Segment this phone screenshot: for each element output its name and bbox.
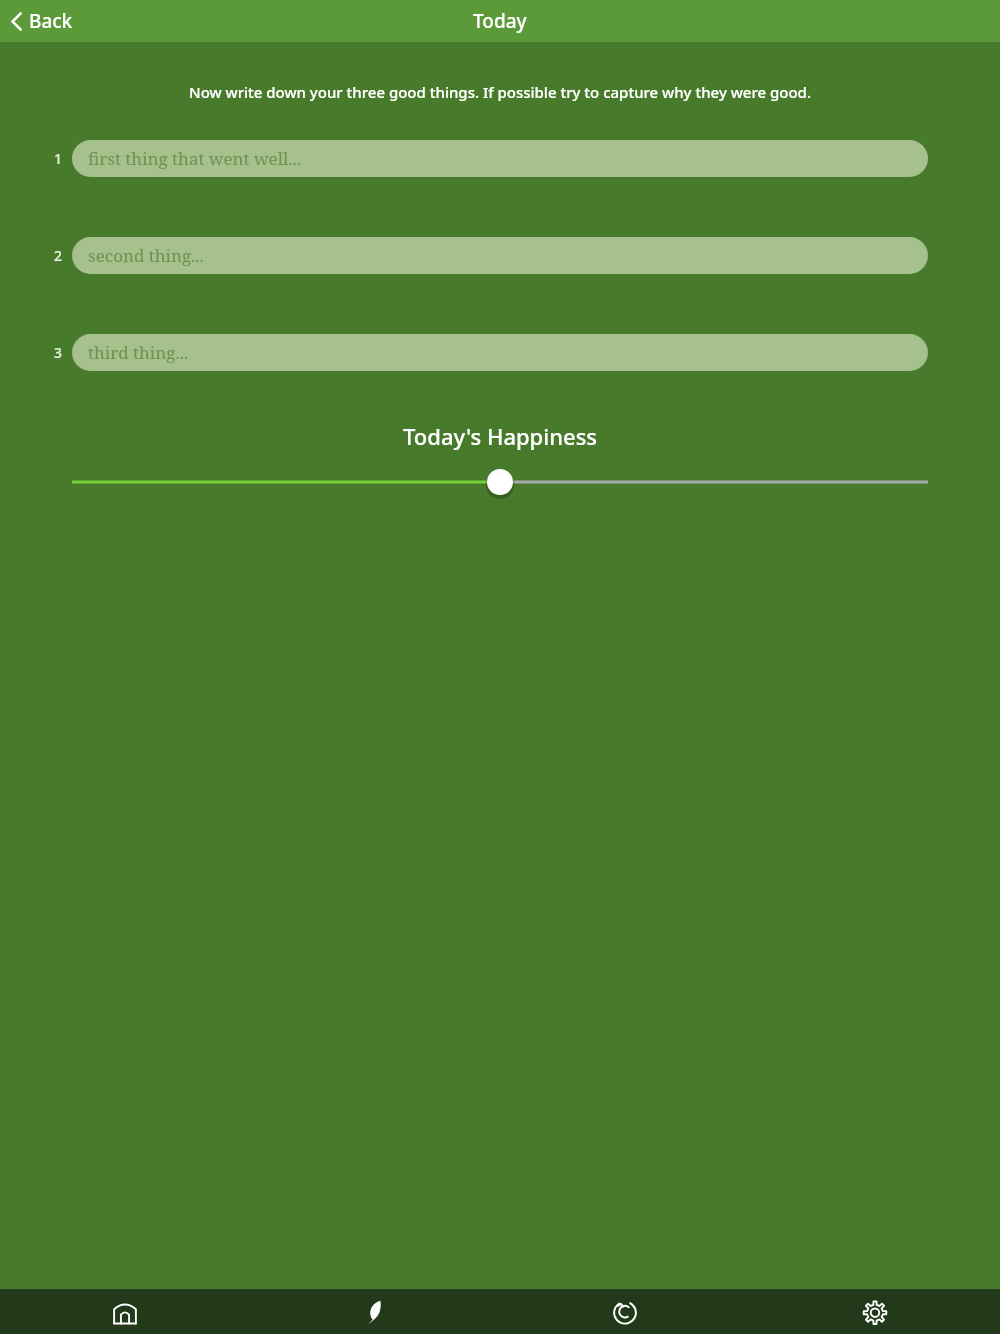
staticText: Now write down your three good things. I… xyxy=(8,82,992,102)
staticText: 1 xyxy=(54,149,63,168)
button[interactable]: Write entry xyxy=(250,1289,500,1334)
staticText: 2 xyxy=(54,246,63,265)
staticText: 3 xyxy=(54,343,63,362)
staticText: Today's Happiness xyxy=(0,421,1000,451)
staticText: Today xyxy=(473,8,527,34)
staticText: first thing that went well... xyxy=(88,147,302,170)
button[interactable]: first thing that went well... xyxy=(72,140,928,177)
button[interactable]: second thing... xyxy=(72,237,928,274)
button[interactable]: third thing... xyxy=(72,334,928,371)
staticText: second thing... xyxy=(88,244,204,267)
button[interactable]: History xyxy=(500,1289,750,1334)
button[interactable]: Back xyxy=(0,0,89,42)
button[interactable]: Home xyxy=(0,1289,250,1334)
button[interactable]: Today's happiness slider xyxy=(0,467,1000,497)
staticText: third thing... xyxy=(88,341,189,364)
button[interactable]: Settings xyxy=(750,1289,1000,1334)
staticText: Back xyxy=(29,8,73,34)
